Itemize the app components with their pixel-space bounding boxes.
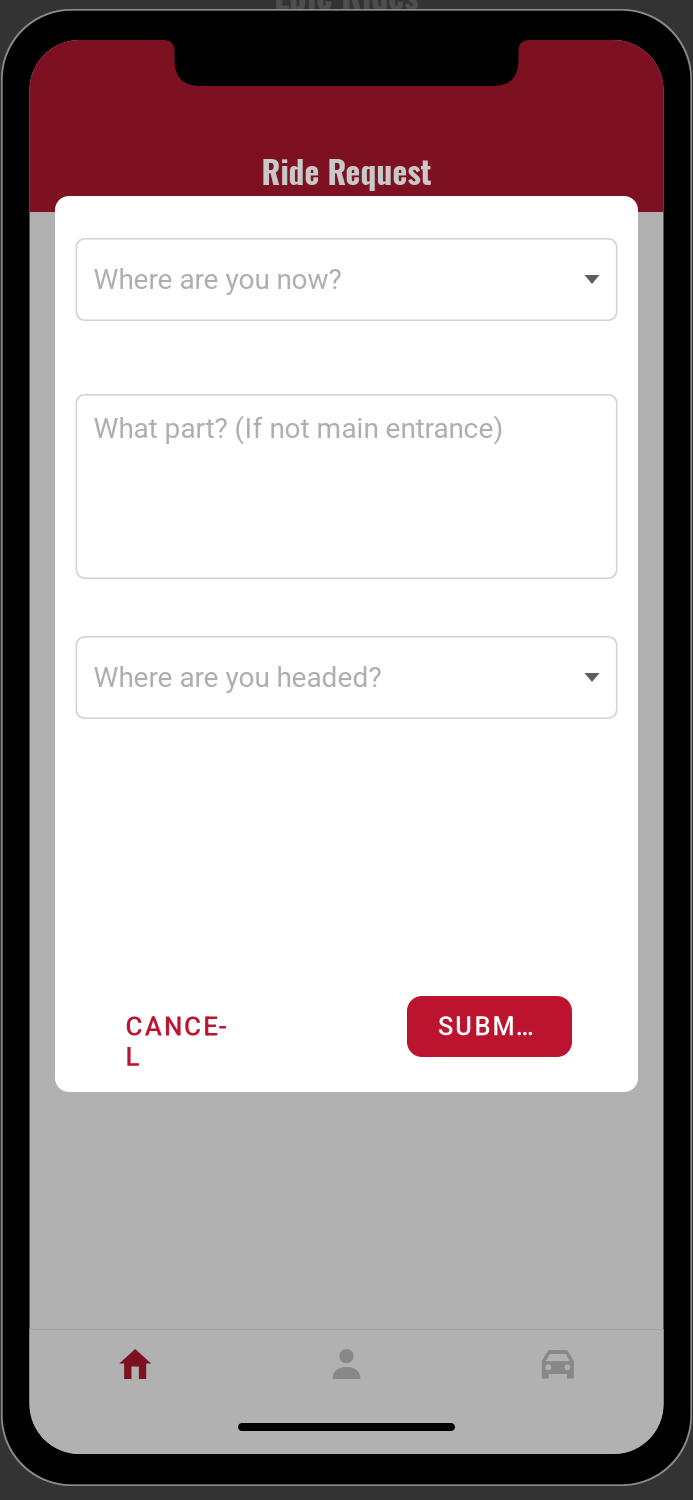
staticText: SUBMIT [438,1012,541,1041]
staticText: What part? (If not main entrance) [93,412,503,445]
staticText: CANCEL [125,1011,234,1042]
staticText: Epic Rides [274,0,419,20]
button[interactable]: Rides [452,1330,663,1398]
button[interactable]: What part? (If not main entrance) [75,394,617,579]
staticText: Where are you now? [93,263,341,296]
button[interactable]: Profile [241,1330,452,1398]
button[interactable]: SUBMIT [407,996,572,1057]
button[interactable]: CANCEL [117,997,243,1055]
button[interactable]: Where are you now? [75,238,617,321]
button[interactable]: Where are you headed? [75,636,617,719]
staticText: Where are you headed? [93,661,381,694]
staticText: Ride Request [261,148,431,194]
button[interactable]: Home [29,1330,241,1398]
